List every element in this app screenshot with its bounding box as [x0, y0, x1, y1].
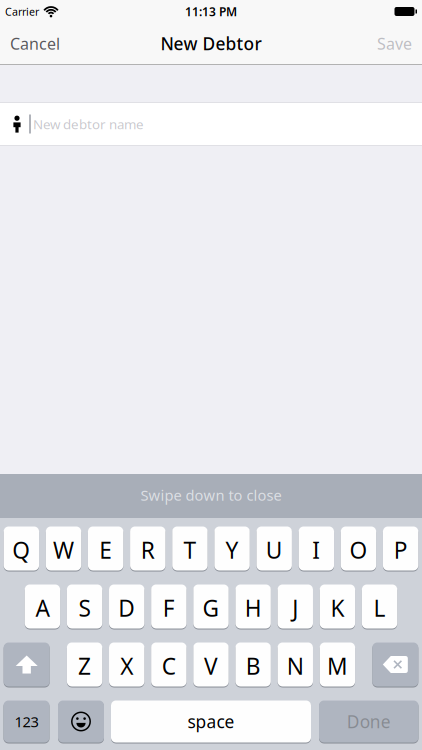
button[interactable]: Cancel: [10, 33, 60, 54]
staticText: Swipe down to close: [140, 485, 281, 505]
button[interactable]: H: [235, 584, 271, 629]
staticText: X: [120, 651, 133, 681]
button[interactable]: Swipe down to close: [0, 474, 422, 518]
button[interactable]: R: [130, 526, 165, 571]
staticText: I: [312, 535, 320, 565]
staticText: V: [204, 651, 218, 681]
button[interactable]: J: [278, 584, 313, 629]
staticText: F: [163, 593, 175, 623]
staticText: Done: [347, 710, 391, 733]
staticText: space: [187, 710, 234, 733]
staticText: Save: [377, 33, 412, 54]
staticText: M: [327, 651, 348, 681]
staticText: W: [53, 535, 74, 565]
button[interactable]: space: [111, 700, 311, 743]
staticText: C: [162, 651, 176, 681]
staticText: 123: [14, 712, 38, 731]
staticText: 11:13 PM: [185, 3, 237, 19]
staticText: R: [141, 535, 155, 565]
staticText: S: [79, 593, 91, 623]
staticText: Q: [12, 535, 30, 565]
staticText: Carrier: [5, 4, 39, 19]
staticText: J: [292, 593, 298, 623]
staticText: Cancel: [10, 33, 60, 54]
staticText: New debtor name: [33, 115, 144, 133]
button[interactable]: M: [320, 642, 355, 687]
button[interactable]: L: [362, 584, 397, 629]
button[interactable]: G: [193, 584, 229, 629]
button[interactable]: P: [383, 526, 418, 571]
button[interactable]: K: [320, 584, 355, 629]
button[interactable]: C: [151, 642, 187, 687]
button[interactable]: W: [46, 526, 81, 571]
button[interactable]: U: [256, 526, 292, 571]
button[interactable]: N: [278, 642, 313, 687]
staticText: N: [287, 651, 304, 681]
button[interactable]: 123: [3, 700, 49, 743]
staticText: L: [374, 593, 386, 623]
button[interactable]: S: [67, 584, 102, 629]
button[interactable]: Z: [67, 642, 102, 687]
staticText: B: [246, 651, 261, 681]
button[interactable]: I: [299, 526, 334, 571]
button[interactable]: D: [109, 584, 144, 629]
button[interactable]: B: [235, 642, 271, 687]
button[interactable]: T: [172, 526, 208, 571]
button[interactable]: New debtor name: [0, 102, 422, 146]
button[interactable]: X: [109, 642, 144, 687]
button[interactable]: Emoji: [58, 700, 104, 743]
button[interactable]: A: [25, 584, 60, 629]
staticText: G: [202, 593, 219, 623]
button[interactable]: Done: [319, 700, 418, 743]
button[interactable]: E: [88, 526, 123, 571]
button[interactable]: Y: [214, 526, 250, 571]
button[interactable]: Delete: [372, 642, 418, 687]
button[interactable]: V: [193, 642, 229, 687]
staticText: D: [118, 593, 135, 623]
staticText: E: [99, 535, 112, 565]
button[interactable]: F: [151, 584, 187, 629]
staticText: H: [245, 593, 262, 623]
staticText: O: [349, 535, 367, 565]
staticText: U: [266, 535, 283, 565]
button[interactable]: Shift: [4, 642, 50, 687]
staticText: T: [183, 535, 196, 565]
staticText: P: [394, 535, 408, 565]
button[interactable]: O: [341, 526, 376, 571]
staticText: A: [35, 593, 49, 623]
button[interactable]: Save: [377, 33, 412, 54]
staticText: Y: [226, 535, 239, 565]
staticText: Z: [78, 651, 91, 681]
button[interactable]: Q: [4, 526, 39, 571]
staticText: K: [330, 593, 344, 623]
staticText: New Debtor: [160, 32, 261, 55]
